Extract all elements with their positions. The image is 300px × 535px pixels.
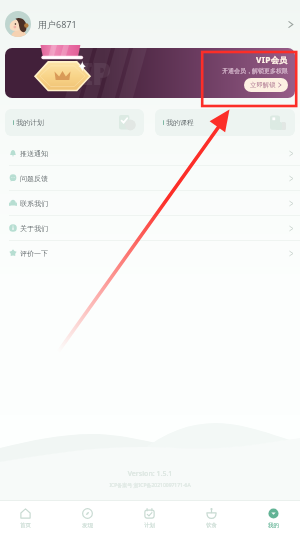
staticText: Version: 1.5.1 [0,469,300,479]
staticText: 计划 [144,522,155,529]
staticText: 发现 [82,522,93,529]
staticText: 关于我们 [20,224,48,233]
button[interactable]: VIP [5,48,295,98]
staticText: ICP备案号 浙ICP备20210097171-6A [0,482,300,489]
staticText: 立即解锁 [250,81,276,89]
staticText: 推送通知 [20,149,48,158]
button[interactable]: 计划 [118,501,180,535]
button[interactable]: 饮食 [180,501,242,535]
button[interactable]: 关于我们 [0,216,300,240]
button[interactable]: 我的 [242,501,300,535]
staticText: VIP会员 [256,54,288,65]
staticText: 问题反馈 [20,174,48,183]
staticText: 首页 [20,522,31,529]
button[interactable]: 立即解锁 [244,78,288,92]
staticText: 开通会员，解锁更多权限 [222,67,288,75]
staticText: 我的课程 [166,118,194,127]
button[interactable]: 首页 [0,501,56,535]
button[interactable]: 联系我们 [0,191,300,215]
staticText: 用户6871 [38,18,77,30]
staticText: VIP [60,53,110,94]
staticText: 评价一下 [20,249,48,258]
button[interactable]: 推送通知 [0,141,300,165]
staticText: 我的 [268,522,279,529]
button[interactable]: 我的课程 [155,109,295,136]
button[interactable]: 用户6871 [0,0,300,48]
staticText: 联系我们 [20,199,48,208]
button[interactable]: 发现 [56,501,118,535]
staticText: 我的计划 [16,118,44,127]
button[interactable]: 我的计划 [5,109,144,136]
button[interactable]: 评价一下 [0,241,300,265]
button[interactable]: 问题反馈 [0,166,300,190]
staticText: 饮食 [206,522,217,529]
